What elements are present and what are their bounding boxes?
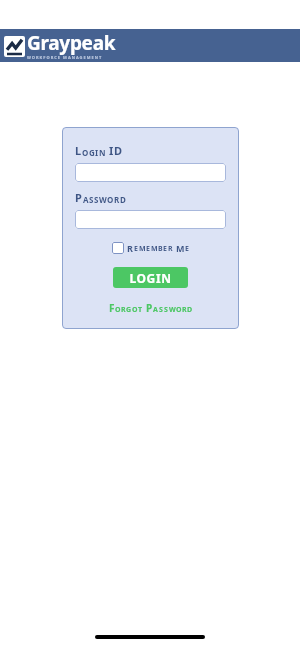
staticText: P bbox=[146, 301, 153, 315]
staticText: W bbox=[169, 305, 176, 315]
staticText: Graypeak bbox=[27, 30, 116, 56]
staticText: W bbox=[99, 194, 107, 205]
staticText: E bbox=[134, 244, 139, 254]
staticText: F bbox=[109, 301, 115, 315]
button[interactable]: Password field bbox=[75, 210, 226, 229]
staticText: O bbox=[82, 147, 89, 158]
staticText: G bbox=[89, 147, 95, 158]
staticText: S bbox=[159, 305, 164, 315]
staticText: O bbox=[176, 305, 182, 315]
staticText: N bbox=[99, 147, 106, 158]
staticText: S bbox=[94, 194, 99, 205]
staticText: P bbox=[75, 190, 83, 205]
button[interactable]: Login ID field bbox=[75, 163, 226, 182]
staticText: E bbox=[146, 244, 151, 254]
staticText: R bbox=[127, 242, 134, 254]
staticText: I bbox=[95, 147, 99, 158]
staticText: S bbox=[164, 305, 169, 315]
staticText: R bbox=[114, 194, 120, 205]
staticText: O bbox=[132, 305, 138, 315]
staticText: R bbox=[168, 244, 173, 254]
staticText: M bbox=[151, 244, 158, 254]
staticText: M bbox=[139, 244, 146, 254]
staticText: I bbox=[109, 143, 114, 158]
button[interactable]: R bbox=[112, 242, 190, 254]
staticText: A bbox=[83, 194, 89, 205]
staticText: D bbox=[120, 194, 127, 205]
staticText: D bbox=[114, 143, 123, 158]
staticText: M bbox=[176, 242, 185, 254]
staticText: R bbox=[121, 305, 126, 315]
staticText: G bbox=[126, 305, 132, 315]
button[interactable]: Graypeak Workforce Management bbox=[4, 30, 116, 62]
staticText: D bbox=[187, 305, 193, 315]
staticText: S bbox=[89, 194, 94, 205]
staticText: B bbox=[158, 244, 163, 254]
staticText: O bbox=[107, 194, 114, 205]
staticText: O bbox=[115, 305, 121, 315]
button[interactable]: LOGIN bbox=[113, 267, 188, 288]
staticText: T bbox=[138, 305, 143, 315]
button[interactable]: F bbox=[109, 301, 193, 315]
staticText: A bbox=[153, 305, 159, 315]
staticText: E bbox=[163, 244, 168, 254]
staticText: R bbox=[182, 305, 187, 315]
staticText: L bbox=[75, 143, 82, 158]
staticText: LOGIN bbox=[129, 270, 172, 286]
staticText: WORKFORCE MANAGEMENT bbox=[27, 55, 103, 60]
staticText: E bbox=[185, 244, 190, 254]
